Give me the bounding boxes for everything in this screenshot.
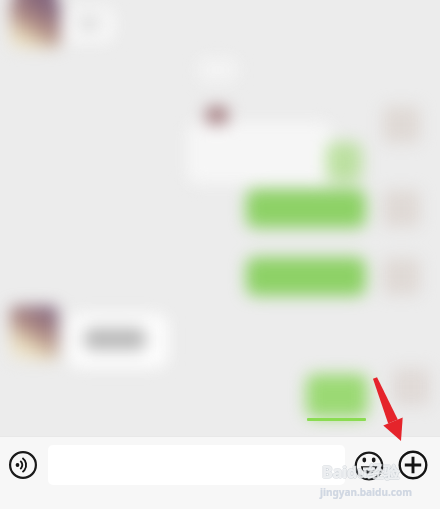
staticText: Baidu经验: [322, 462, 400, 484]
staticText: Baidu经验: [323, 461, 401, 483]
button[interactable]: [354, 451, 384, 481]
button[interactable]: [398, 450, 428, 480]
button[interactable]: [8, 450, 38, 480]
staticText: Baidu经验: [322, 460, 400, 482]
staticText: Baidu经验: [321, 461, 399, 483]
staticText: jingyan.baidu.com: [320, 485, 412, 499]
button[interactable]: [48, 445, 345, 485]
staticText: Baidu经验: [322, 461, 400, 483]
